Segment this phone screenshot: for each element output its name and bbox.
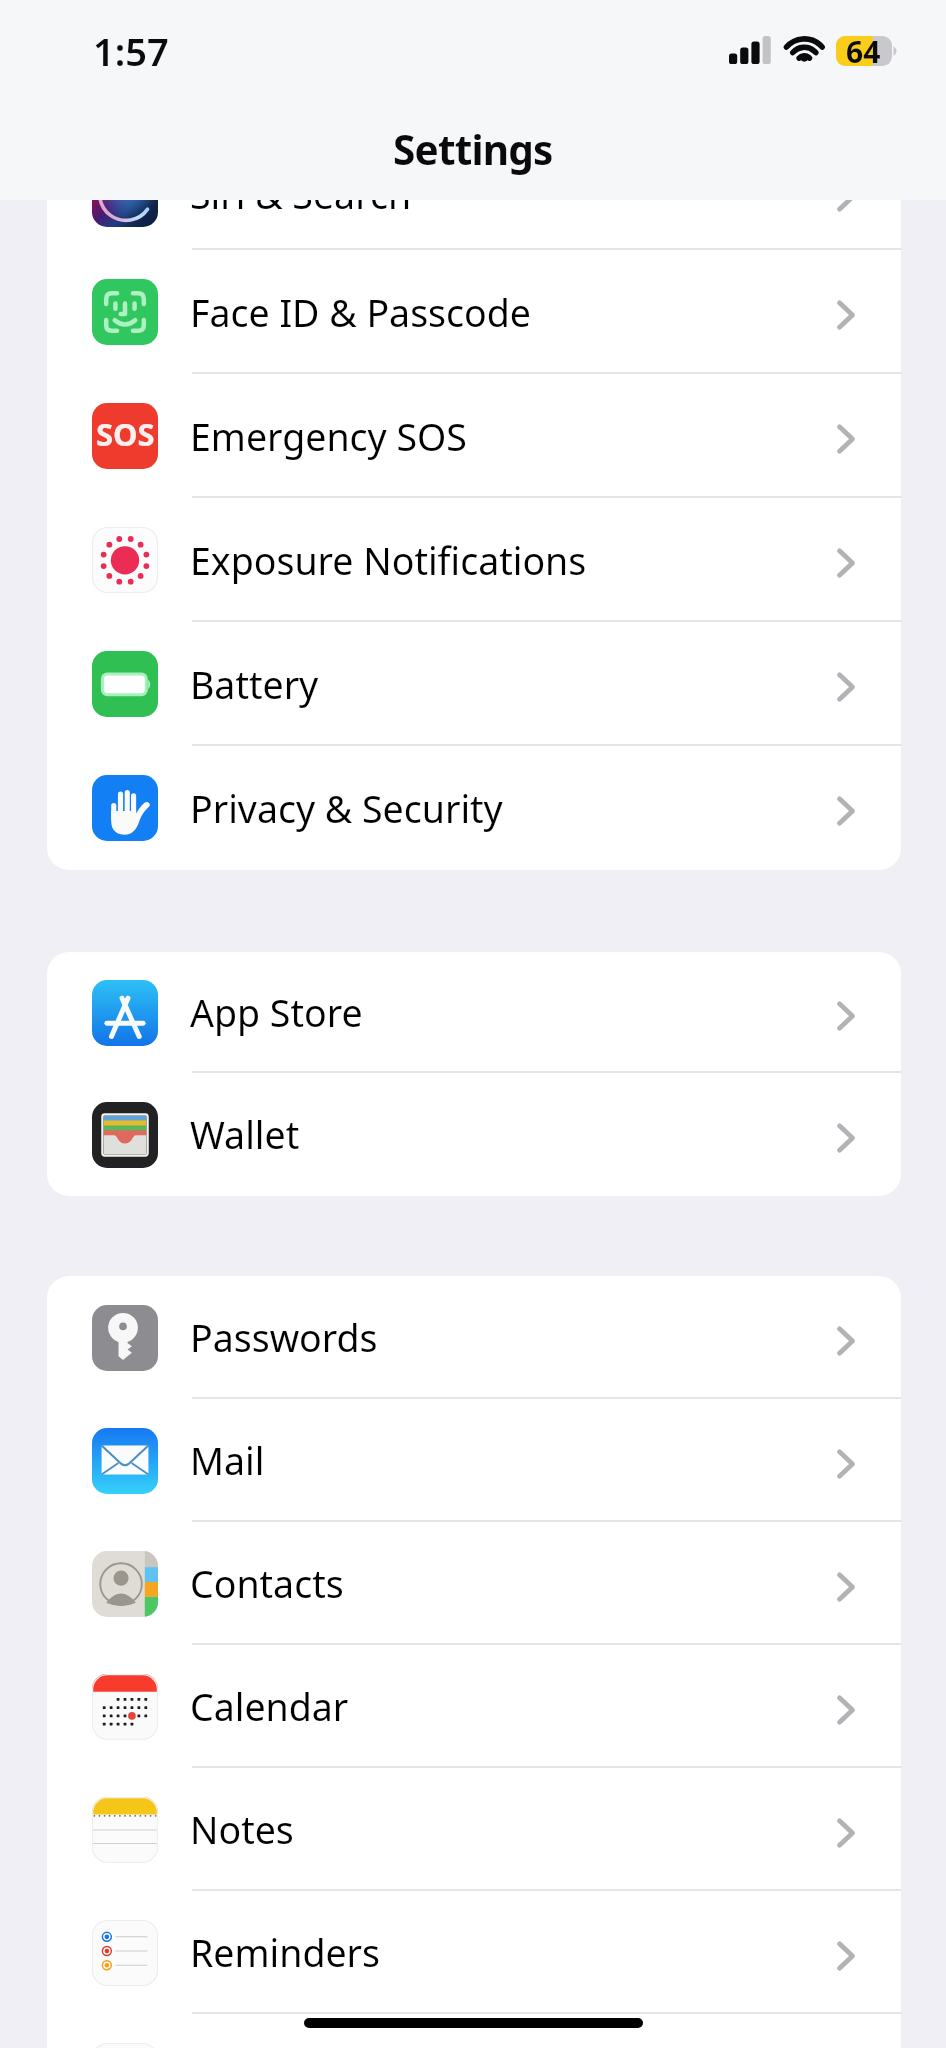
button[interactable]: Emergency SOS — [47, 374, 901, 498]
staticText: Emergency SOS — [190, 411, 467, 462]
staticText: Face ID & Passcode — [190, 287, 531, 338]
staticText: SOS — [96, 413, 155, 455]
staticText: 1:57 — [93, 25, 169, 77]
button[interactable]: Battery — [47, 622, 901, 746]
staticText: Wallet — [190, 1109, 300, 1160]
button[interactable]: App Store — [47, 952, 901, 1073]
staticText: Reminders — [190, 1927, 381, 1978]
staticText: Siri & Search — [190, 169, 412, 220]
button[interactable]: Mail — [47, 1399, 901, 1522]
staticText: Contacts — [190, 1558, 344, 1609]
staticText: Privacy & Security — [190, 783, 503, 834]
button[interactable]: Face ID & Passcode — [47, 250, 901, 374]
button[interactable]: Reminders — [47, 1891, 901, 2014]
staticText: Notes — [190, 1804, 294, 1855]
staticText: Settings — [393, 122, 553, 177]
staticText: 64 — [846, 31, 881, 72]
button[interactable]: Siri & Search — [47, 138, 901, 250]
staticText: Calendar — [190, 1681, 349, 1732]
button[interactable]: Calendar — [47, 1645, 901, 1768]
button[interactable]: Voice Memos — [47, 2014, 901, 2048]
staticText: Exposure Notifications — [190, 535, 587, 586]
button[interactable]: Notes — [47, 1768, 901, 1891]
button[interactable]: Privacy & Security — [47, 746, 901, 870]
staticText: Passwords — [190, 1312, 378, 1363]
button[interactable]: Passwords — [47, 1276, 901, 1399]
staticText: Battery — [190, 659, 319, 710]
staticText: App Store — [190, 987, 363, 1038]
staticText: Mail — [190, 1435, 265, 1486]
button[interactable]: Exposure Notifications — [47, 498, 901, 622]
button[interactable]: Contacts — [47, 1522, 901, 1645]
button[interactable]: Wallet — [47, 1073, 901, 1196]
